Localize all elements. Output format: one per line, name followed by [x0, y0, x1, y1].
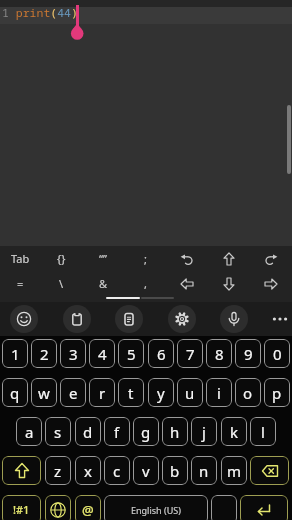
- button[interactable]: a: [16, 417, 42, 446]
- button[interactable]: 6: [148, 339, 174, 368]
- staticText: {}: [57, 251, 66, 266]
- staticText: “”: [99, 251, 107, 266]
- button[interactable]: w: [31, 378, 57, 407]
- button[interactable]: [115, 305, 143, 333]
- button[interactable]: b: [162, 456, 188, 485]
- button[interactable]: h: [162, 417, 188, 446]
- button[interactable]: [166, 246, 208, 271]
- button[interactable]: 1: [2, 339, 28, 368]
- button[interactable]: d: [75, 417, 101, 446]
- button[interactable]: 0: [264, 339, 290, 368]
- staticText: &: [99, 276, 108, 291]
- button[interactable]: p: [264, 378, 290, 407]
- button[interactable]: [208, 246, 250, 271]
- staticText: r: [99, 383, 106, 403]
- button[interactable]: q: [2, 378, 28, 407]
- button[interactable]: {}: [41, 246, 82, 271]
- staticText: Tab: [11, 251, 30, 266]
- staticText: h: [170, 422, 180, 442]
- staticText: 8: [215, 344, 224, 364]
- button[interactable]: k: [221, 417, 247, 446]
- button[interactable]: [250, 271, 292, 296]
- button[interactable]: z: [45, 456, 71, 485]
- staticText: 6: [157, 344, 166, 364]
- button[interactable]: 9: [235, 339, 261, 368]
- staticText: f: [114, 422, 120, 442]
- button[interactable]: e: [60, 378, 86, 407]
- button[interactable]: \: [41, 271, 82, 296]
- staticText: g: [141, 422, 151, 442]
- staticText: a: [25, 422, 34, 442]
- button[interactable]: =: [0, 271, 41, 296]
- button[interactable]: 8: [206, 339, 232, 368]
- button[interactable]: r: [89, 378, 115, 407]
- button[interactable]: [166, 271, 208, 296]
- staticText: 7: [186, 344, 195, 364]
- button[interactable]: [208, 271, 250, 296]
- button[interactable]: m: [221, 456, 247, 485]
- button[interactable]: n: [191, 456, 217, 485]
- button[interactable]: [220, 305, 248, 333]
- button[interactable]: 7: [177, 339, 203, 368]
- staticText: d: [83, 422, 93, 442]
- staticText: 4: [98, 344, 107, 364]
- button[interactable]: English (US): [104, 495, 208, 520]
- button[interactable]: x: [75, 456, 101, 485]
- staticText: m: [227, 461, 242, 481]
- button[interactable]: g: [133, 417, 159, 446]
- staticText: 9: [244, 344, 253, 364]
- staticText: \: [59, 276, 64, 291]
- staticText: c: [113, 461, 121, 481]
- staticText: b: [170, 461, 180, 481]
- button[interactable]: v: [133, 456, 159, 485]
- button[interactable]: 3: [60, 339, 86, 368]
- button[interactable]: &: [82, 271, 124, 296]
- staticText: l: [261, 422, 265, 442]
- button[interactable]: u: [177, 378, 203, 407]
- staticText: ;: [144, 251, 147, 266]
- button[interactable]: 5: [118, 339, 144, 368]
- button[interactable]: [266, 305, 292, 333]
- staticText: t: [128, 383, 134, 403]
- button[interactable]: f: [104, 417, 130, 446]
- button[interactable]: [250, 456, 289, 485]
- staticText: n: [199, 461, 209, 481]
- button[interactable]: 4: [89, 339, 115, 368]
- staticText: y: [157, 383, 165, 403]
- staticText: x: [84, 461, 92, 481]
- button[interactable]: [63, 305, 91, 333]
- button[interactable]: 2: [31, 339, 57, 368]
- staticText: z: [54, 461, 62, 481]
- button[interactable]: [2, 456, 41, 485]
- button[interactable]: [10, 305, 38, 333]
- button[interactable]: [250, 246, 292, 271]
- staticText: English (US): [131, 504, 181, 516]
- staticText: q: [10, 383, 20, 403]
- button[interactable]: ;: [124, 246, 166, 271]
- button[interactable]: [211, 495, 237, 520]
- button[interactable]: “”: [82, 246, 124, 271]
- button[interactable]: [45, 495, 71, 520]
- button[interactable]: Tab: [0, 246, 41, 271]
- button[interactable]: @: [75, 495, 101, 520]
- button[interactable]: c: [104, 456, 130, 485]
- button[interactable]: [168, 305, 196, 333]
- button[interactable]: !#1: [2, 495, 41, 520]
- button[interactable]: o: [235, 378, 261, 407]
- button[interactable]: y: [148, 378, 174, 407]
- button[interactable]: j: [191, 417, 217, 446]
- staticText: e: [69, 383, 78, 403]
- button[interactable]: l: [250, 417, 276, 446]
- button[interactable]: s: [45, 417, 71, 446]
- staticText: 5: [127, 344, 136, 364]
- staticText: v: [142, 461, 150, 481]
- staticText: =: [17, 276, 24, 291]
- button[interactable]: ,: [124, 271, 166, 296]
- button[interactable]: i: [206, 378, 232, 407]
- button[interactable]: t: [118, 378, 144, 407]
- staticText: 0: [273, 344, 282, 364]
- button[interactable]: [240, 495, 288, 520]
- staticText: o: [243, 383, 253, 403]
- staticText: !#1: [13, 502, 30, 517]
- staticText: k: [230, 422, 239, 442]
